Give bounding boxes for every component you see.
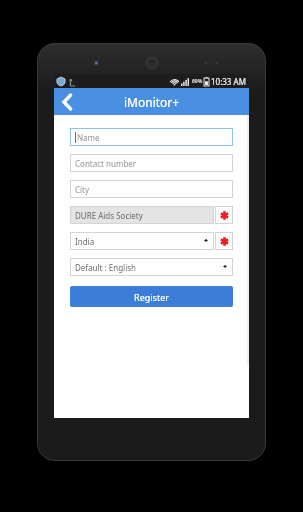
staticText: 60% (192, 78, 203, 85)
button[interactable]: Default : English (70, 258, 233, 276)
staticText: Register (134, 291, 169, 303)
button[interactable]: Back (54, 88, 80, 115)
staticText: iMonitor+ (124, 94, 180, 110)
staticText: Contact number (75, 158, 137, 169)
other: Required field (215, 206, 233, 224)
button[interactable]: Name (70, 128, 233, 146)
staticText: Name (77, 132, 100, 143)
staticText: City (75, 184, 90, 195)
staticText: DURE Aids Society (75, 210, 143, 221)
button[interactable]: Contact number (70, 154, 233, 172)
staticText: India (75, 236, 95, 247)
staticText: Default : English (75, 262, 137, 273)
button[interactable]: India (70, 232, 214, 250)
button[interactable]: Register (70, 286, 233, 307)
other: Required field (215, 232, 233, 250)
button[interactable]: DURE Aids Society (70, 206, 214, 224)
staticText: 10:33 AM (211, 76, 246, 87)
button[interactable]: City (70, 180, 233, 198)
